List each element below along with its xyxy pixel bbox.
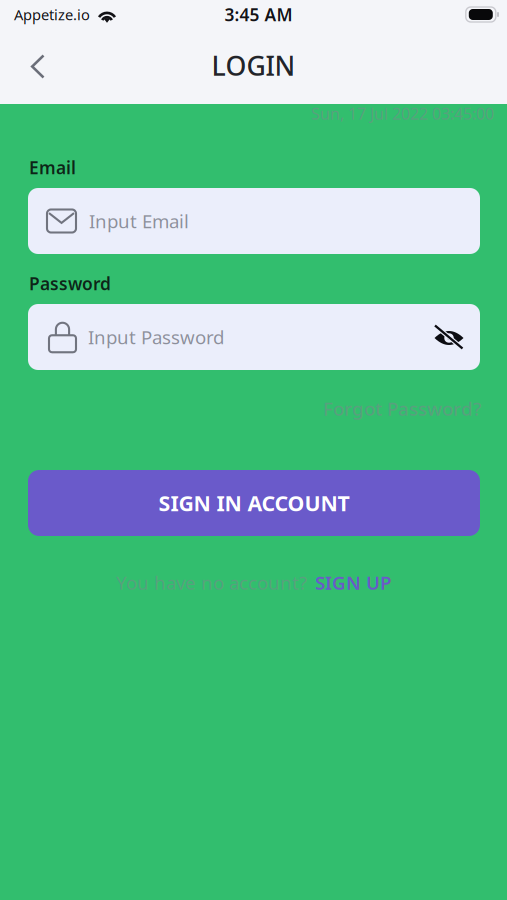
staticText: Email [29, 156, 76, 179]
button[interactable]: SIGN UP [315, 570, 391, 595]
staticText: Appetize.io [14, 5, 90, 24]
staticText: Forgot Password? [323, 396, 481, 421]
button[interactable]: Forgot Password? [0, 396, 481, 421]
staticText: Password [29, 272, 111, 295]
staticText: Sun, 17 Jul 2022 03:45:00 [311, 103, 494, 124]
button[interactable]: Show password [427, 315, 471, 359]
staticText: SIGN IN ACCOUNT [158, 489, 349, 517]
staticText: 3:45 AM [224, 3, 292, 26]
staticText: Input Password [88, 325, 224, 349]
button[interactable]: Back [0, 41, 76, 91]
button[interactable]: SIGN IN ACCOUNT [28, 470, 480, 536]
staticText: LOGIN [211, 48, 295, 83]
staticText: You have no account? [116, 570, 307, 595]
staticText: Input Email [89, 209, 189, 233]
staticText: SIGN UP [315, 570, 391, 595]
